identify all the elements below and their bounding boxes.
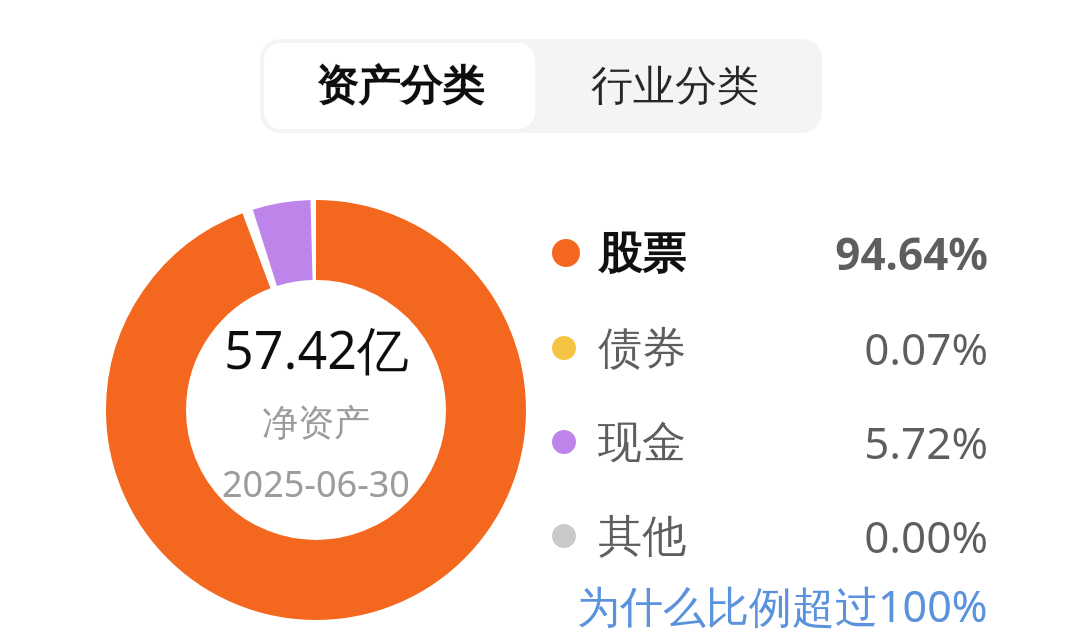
button[interactable]: 现金 [552,403,988,481]
staticText: 债券 [598,321,686,376]
button[interactable]: 行业分类 [539,43,810,129]
staticText: 5.72% [864,412,988,472]
staticText: 2025-06-30 [222,459,410,508]
staticText: 其他 [598,509,686,564]
staticText: 0.07% [864,318,988,378]
staticText: 为什么比例超过100% [577,576,988,635]
staticText: 57.42亿 [224,313,409,384]
staticText: 0.00% [864,506,988,566]
staticText: 资产分类 [316,60,484,113]
button[interactable]: 为什么比例超过100% [552,573,988,637]
other: Asset allocation donut chart [106,200,526,620]
staticText: 净资产 [262,400,370,445]
staticText: 现金 [598,415,686,470]
staticText: 股票 [598,226,686,281]
button[interactable]: 资产分类 [264,43,535,129]
staticText: 94.64% [835,223,988,283]
button[interactable]: 股票 [552,214,988,292]
button[interactable]: 其他 [552,497,988,575]
staticText: 行业分类 [591,60,759,113]
button[interactable]: 债券 [552,309,988,387]
